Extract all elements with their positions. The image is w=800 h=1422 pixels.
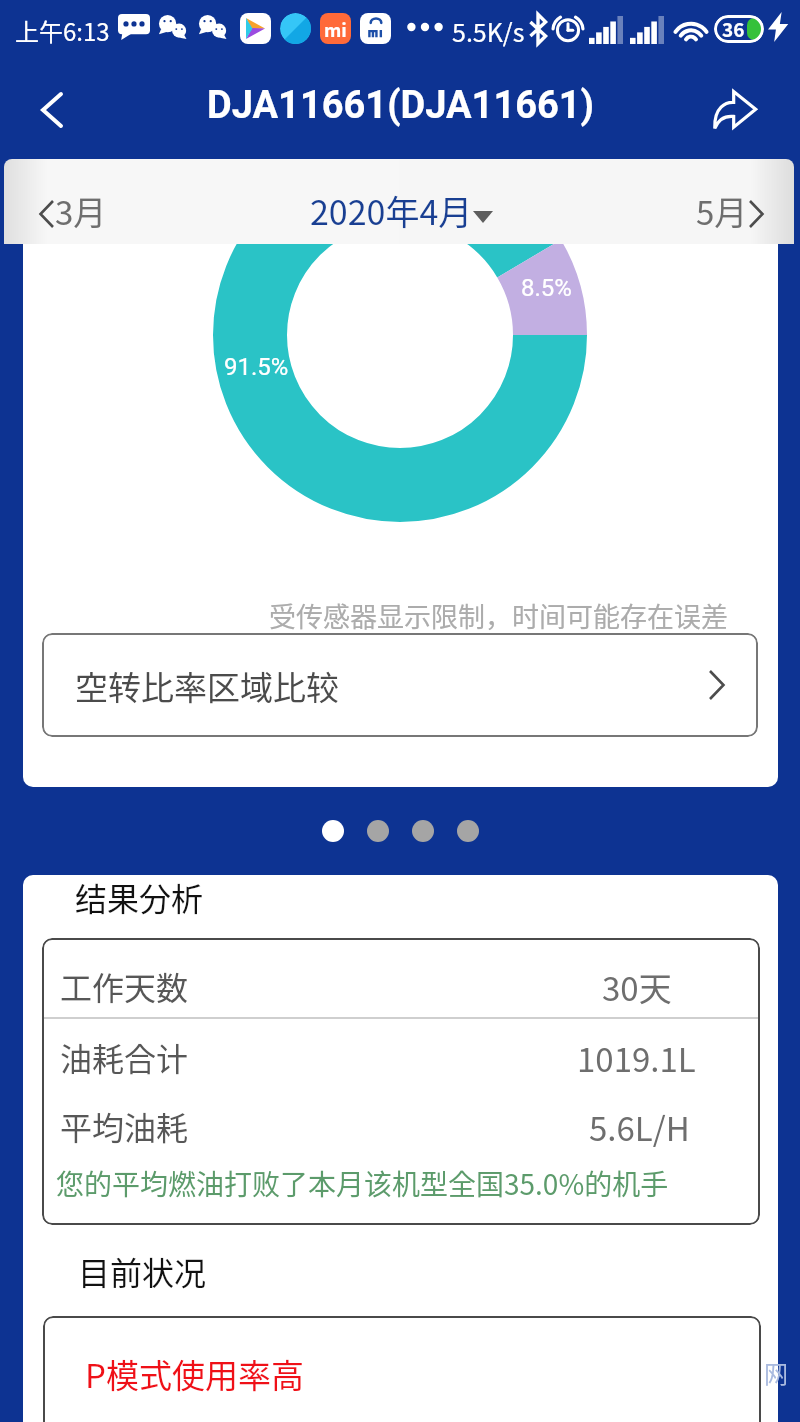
staticText: 1019.1L	[577, 1034, 696, 1082]
button[interactable]: 5月	[696, 159, 763, 244]
staticText: 结果分析	[75, 875, 204, 920]
staticText: 油耗合计	[60, 1034, 189, 1080]
staticText: 网	[764, 1355, 788, 1390]
button[interactable]: Back	[22, 80, 82, 140]
staticText: 91.5%	[224, 353, 289, 381]
staticText: 平均油耗	[60, 1103, 189, 1149]
staticText: 5.6L/H	[589, 1103, 690, 1151]
button[interactable]: 空转比率区域比较	[42, 633, 758, 737]
button[interactable]: P模式使用率高	[43, 1316, 761, 1422]
staticText: 3月	[55, 187, 107, 235]
staticText: 5月	[696, 187, 748, 235]
staticText: 空转比率区域比较	[75, 662, 339, 710]
staticText: 您的平均燃油打败了本月该机型全国35.0%的机手	[56, 1163, 669, 1204]
staticText: 36	[722, 15, 745, 43]
staticText: 8.5%	[521, 274, 572, 302]
button[interactable]: Share	[705, 80, 765, 140]
staticText: mi	[324, 16, 347, 42]
button[interactable]: 2020年4月	[310, 159, 493, 244]
staticText: 5.5K/s	[452, 13, 525, 49]
staticText: 工作天数	[60, 963, 189, 1009]
staticText: 目前状况	[78, 1248, 207, 1294]
staticText: 2020年4月	[310, 186, 473, 235]
staticText: P模式使用率高	[85, 1350, 304, 1398]
button[interactable]: 3月	[40, 159, 107, 244]
staticText: 上午6:13	[15, 13, 110, 48]
staticText: 受传感器显示限制，时间可能存在误差	[23, 596, 728, 635]
staticText: 30天	[602, 963, 672, 1011]
staticText: DJA11661(DJA11661)	[207, 83, 594, 128]
